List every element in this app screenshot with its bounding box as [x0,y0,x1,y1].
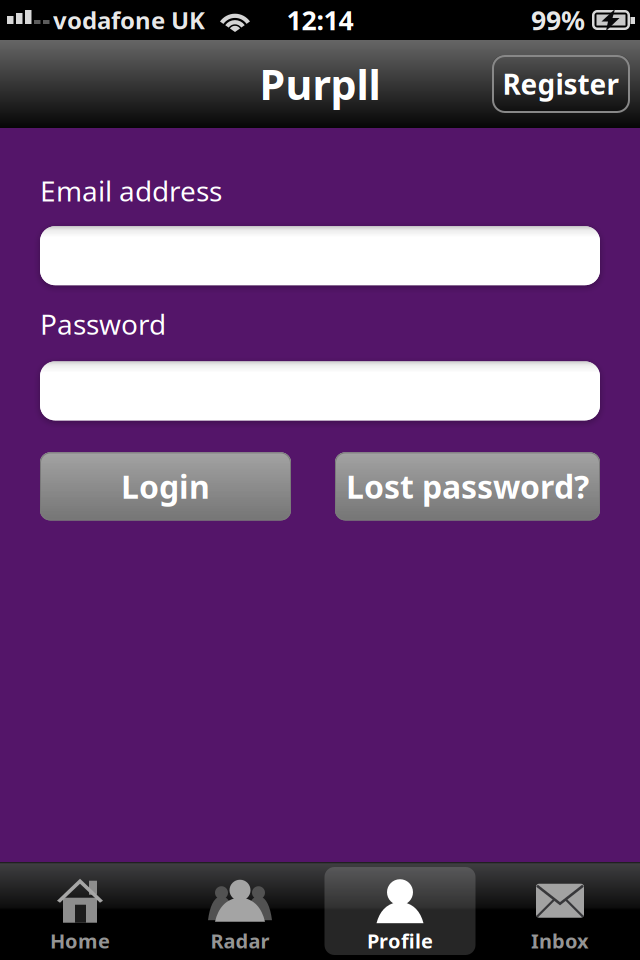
staticText: Purpll [259,57,380,111]
button[interactable]: Profile [320,862,480,960]
staticText: vodafone UK [53,4,205,36]
staticText: Home [50,927,110,954]
button[interactable]: Register [492,55,630,113]
button[interactable]: Home [0,862,160,960]
button[interactable] [40,226,600,285]
button[interactable]: Lost password? [335,452,600,520]
staticText: Lost password? [346,465,589,508]
staticText: Inbox [531,927,589,954]
staticText: Login [121,465,210,508]
staticText: Radar [210,927,269,954]
button[interactable]: Radar [160,862,320,960]
staticText: Password [40,305,166,342]
staticText: Email address [40,172,222,209]
button[interactable] [40,361,600,420]
staticText: Register [502,65,619,103]
button[interactable]: Inbox [480,862,640,960]
staticText: Profile [367,927,433,954]
staticText: 99% [531,2,585,38]
button[interactable]: Login [40,452,291,520]
staticText: 12:14 [286,2,353,38]
